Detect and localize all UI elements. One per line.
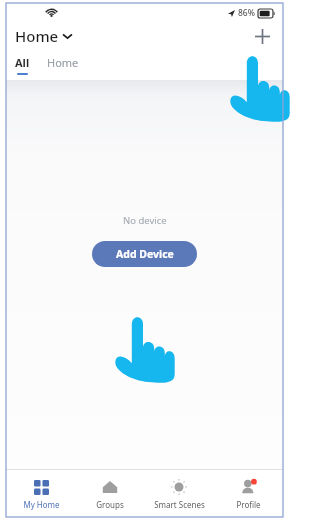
staticText: Groups — [96, 499, 124, 510]
staticText: No device — [123, 214, 167, 227]
button[interactable]: All — [15, 55, 30, 75]
staticText: Home — [15, 26, 59, 46]
staticText: My Home — [23, 499, 60, 510]
staticText: Home — [47, 55, 79, 70]
button[interactable]: Add Device — [92, 241, 197, 267]
button[interactable]: Profile — [214, 478, 282, 510]
staticText: 86% — [238, 7, 255, 19]
button[interactable]: Add device — [247, 22, 277, 50]
staticText: Smart Scenes — [154, 499, 205, 510]
button[interactable]: Home — [15, 26, 72, 46]
staticText: Profile — [236, 499, 261, 510]
button[interactable]: Groups — [76, 478, 144, 510]
button[interactable]: Home — [47, 55, 79, 70]
button[interactable]: My Home — [7, 478, 75, 510]
button[interactable]: Smart Scenes — [145, 478, 213, 510]
staticText: All — [15, 55, 30, 70]
staticText: Add Device — [116, 247, 174, 261]
